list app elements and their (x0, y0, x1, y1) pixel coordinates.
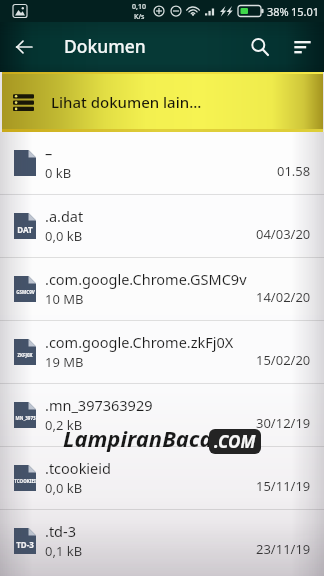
button[interactable]: – (0, 132, 324, 194)
staticText: K/s (134, 12, 145, 22)
button[interactable]: Back (0, 22, 48, 72)
staticText: – (45, 143, 53, 163)
button[interactable]: Search (246, 22, 288, 72)
staticText: .mn_397363929 (45, 395, 153, 415)
staticText: .com.google.Chrome.zkFj0X (45, 332, 234, 352)
staticText: .tcookieid (45, 458, 111, 478)
staticText: 0,0 kB (45, 227, 83, 245)
button[interactable]: Sort (288, 22, 324, 72)
staticText: TCOOKIEID (14, 478, 36, 484)
staticText: .com.google.Chrome.GSMC9v (45, 269, 247, 289)
button[interactable]: MN_3973 (0, 384, 324, 446)
staticText: TD-3 (16, 539, 34, 550)
staticText: 0,0 kB (45, 479, 83, 497)
staticText: GSMC9V (16, 289, 35, 295)
staticText: Lihat dokumen lain... (51, 92, 202, 112)
staticText: 15.01 (291, 4, 320, 19)
staticText: 0 kB (45, 164, 72, 182)
button[interactable]: ZKFJ0X (0, 321, 324, 383)
staticText: .td-3 (45, 521, 77, 541)
button[interactable]: GSMC9V (0, 258, 324, 320)
staticText: 0,1 kB (45, 542, 83, 560)
staticText: .a.dat (45, 206, 84, 226)
staticText: DAT (17, 224, 33, 235)
staticText: 04/03/20 (256, 225, 311, 243)
staticText: 30/12/19 (256, 414, 311, 432)
staticText: 38% (267, 4, 289, 19)
staticText: MN_3973 (15, 415, 36, 421)
button[interactable]: TCOOKIEID (0, 447, 324, 509)
button[interactable]: DAT (0, 195, 324, 257)
staticText: 0,10 (132, 2, 146, 12)
staticText: 15/02/20 (256, 351, 311, 369)
staticText: Dokumen (64, 34, 146, 58)
staticText: 0,2 kB (45, 416, 83, 434)
button[interactable]: Lihat dokumen lain... (2, 72, 323, 132)
staticText: LampiranBaca (63, 423, 213, 453)
staticText: .COM (214, 430, 256, 453)
staticText: 10 MB (45, 290, 84, 308)
staticText: 15/11/19 (256, 477, 311, 495)
staticText: 14/02/20 (256, 288, 311, 306)
staticText: 19 MB (45, 353, 84, 371)
staticText: 01.58 (277, 162, 311, 180)
staticText: ZKFJ0X (17, 352, 33, 358)
staticText: 23/11/19 (256, 540, 311, 558)
button[interactable]: TD-3 (0, 510, 324, 572)
